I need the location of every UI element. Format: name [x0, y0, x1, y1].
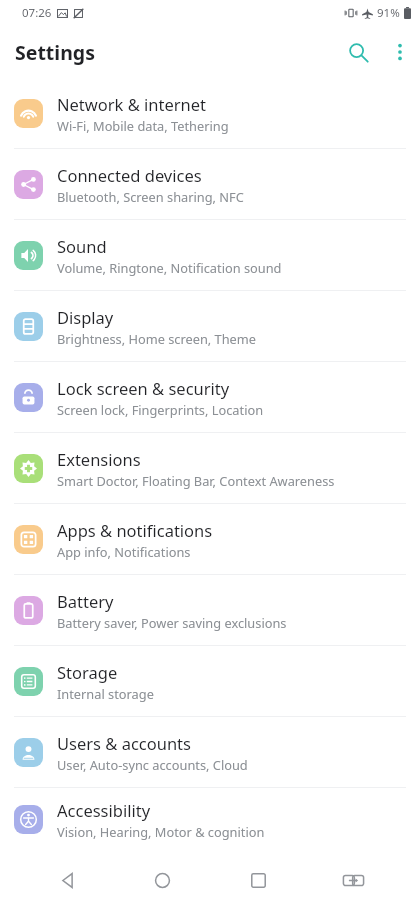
staticText: Accessibility [57, 799, 151, 821]
staticText: Wi-Fi, Mobile data, Tethering [57, 117, 229, 134]
staticText: Apps & notifications [57, 519, 213, 541]
staticText: Storage [57, 661, 118, 683]
staticText: 91% [377, 5, 400, 21]
button[interactable]: Extensions [0, 433, 420, 503]
button[interactable]: Lock screen & security [0, 362, 420, 432]
staticText: Screen lock, Fingerprints, Location [57, 401, 264, 418]
staticText: Connected devices [57, 164, 202, 186]
button[interactable]: Battery [0, 575, 420, 645]
staticText: Lock screen & security [57, 377, 230, 399]
staticText: Brightness, Home screen, Theme [57, 330, 257, 347]
button[interactable]: Search [336, 30, 380, 74]
staticText: Bluetooth, Screen sharing, NFC [57, 188, 244, 205]
button[interactable]: More options [380, 32, 420, 72]
staticText: Sound [57, 235, 107, 257]
button[interactable]: Users & accounts [0, 717, 420, 787]
button[interactable]: Sound [0, 220, 420, 290]
button[interactable]: Home [139, 857, 185, 903]
staticText: Settings [15, 39, 95, 66]
staticText: Network & internet [57, 93, 207, 115]
staticText: Extensions [57, 448, 141, 470]
button[interactable]: Accessibility [0, 788, 420, 850]
staticText: Volume, Ringtone, Notification sound [57, 259, 282, 276]
button[interactable]: Connected devices [0, 149, 420, 219]
staticText: Vision, Hearing, Motor & cognition [57, 823, 265, 840]
button[interactable]: Recents [235, 857, 281, 903]
button[interactable]: Back [44, 857, 90, 903]
button[interactable]: Apps & notifications [0, 504, 420, 574]
button[interactable]: Switch app [330, 857, 376, 903]
button[interactable]: Network & internet [0, 78, 420, 148]
staticText: Display [57, 306, 114, 328]
staticText: Internal storage [57, 685, 154, 702]
staticText: App info, Notifications [57, 543, 191, 560]
staticText: Battery [57, 590, 114, 612]
staticText: Battery saver, Power saving exclusions [57, 614, 287, 631]
button[interactable]: Storage [0, 646, 420, 716]
button[interactable]: Display [0, 291, 420, 361]
staticText: Users & accounts [57, 732, 191, 754]
staticText: 07:26 [22, 5, 52, 21]
staticText: User, Auto-sync accounts, Cloud [57, 756, 248, 773]
staticText: Smart Doctor, Floating Bar, Context Awar… [57, 472, 335, 489]
